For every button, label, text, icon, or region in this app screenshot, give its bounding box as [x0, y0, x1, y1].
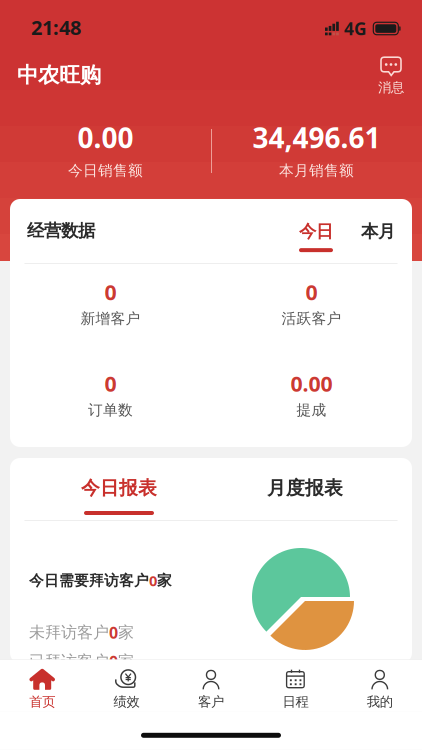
- staticText: 0.00: [290, 369, 332, 398]
- staticText: 活跃客户: [281, 309, 341, 327]
- staticText: 本月销售额: [279, 161, 354, 179]
- staticText: 家: [157, 571, 172, 589]
- staticText: 已拜访客户: [29, 652, 109, 671]
- staticText: 消息: [378, 79, 404, 96]
- staticText: 绩效: [114, 694, 140, 710]
- staticText: 家: [118, 623, 134, 642]
- staticText: 未拜访客户: [29, 623, 109, 642]
- staticText: 本月: [361, 221, 395, 242]
- staticText: 中农旺购: [17, 62, 101, 88]
- staticText: 21:48: [31, 14, 81, 41]
- button[interactable]: 本月: [358, 214, 398, 259]
- staticText: 0: [104, 278, 116, 306]
- staticText: 今日报表: [81, 476, 157, 499]
- button[interactable]: 我的: [338, 660, 422, 712]
- button[interactable]: 绩效: [84, 660, 169, 712]
- staticText: 0: [305, 278, 317, 306]
- staticText: 经营数据: [27, 220, 95, 241]
- staticText: 今日: [299, 221, 333, 242]
- staticText: 家: [118, 652, 134, 671]
- staticText: 34,496.61: [252, 119, 380, 156]
- staticText: 订单数: [88, 401, 133, 419]
- staticText: 今日销售额: [68, 161, 143, 179]
- staticText: 0: [109, 651, 118, 672]
- staticText: 客户: [198, 694, 224, 710]
- staticText: 0: [149, 571, 157, 590]
- button[interactable]: 月度报表: [250, 458, 360, 520]
- staticText: 我的: [367, 694, 393, 710]
- button[interactable]: 消息: [371, 57, 411, 95]
- button[interactable]: 日程: [253, 660, 338, 712]
- staticText: 日程: [282, 694, 308, 710]
- staticText: 0: [109, 622, 118, 643]
- staticText: 0: [104, 369, 116, 398]
- button[interactable]: 今日: [296, 214, 336, 259]
- staticText: 4G: [344, 17, 367, 40]
- staticText: 提成: [296, 401, 326, 419]
- button[interactable]: 客户: [169, 660, 253, 712]
- button[interactable]: 首页: [0, 660, 84, 712]
- staticText: 今日需要拜访客户: [29, 571, 149, 589]
- staticText: 新增客户: [80, 309, 140, 327]
- staticText: 首页: [29, 694, 55, 710]
- staticText: 0.00: [77, 119, 133, 156]
- button[interactable]: 今日报表: [64, 458, 174, 520]
- staticText: 月度报表: [267, 476, 343, 499]
